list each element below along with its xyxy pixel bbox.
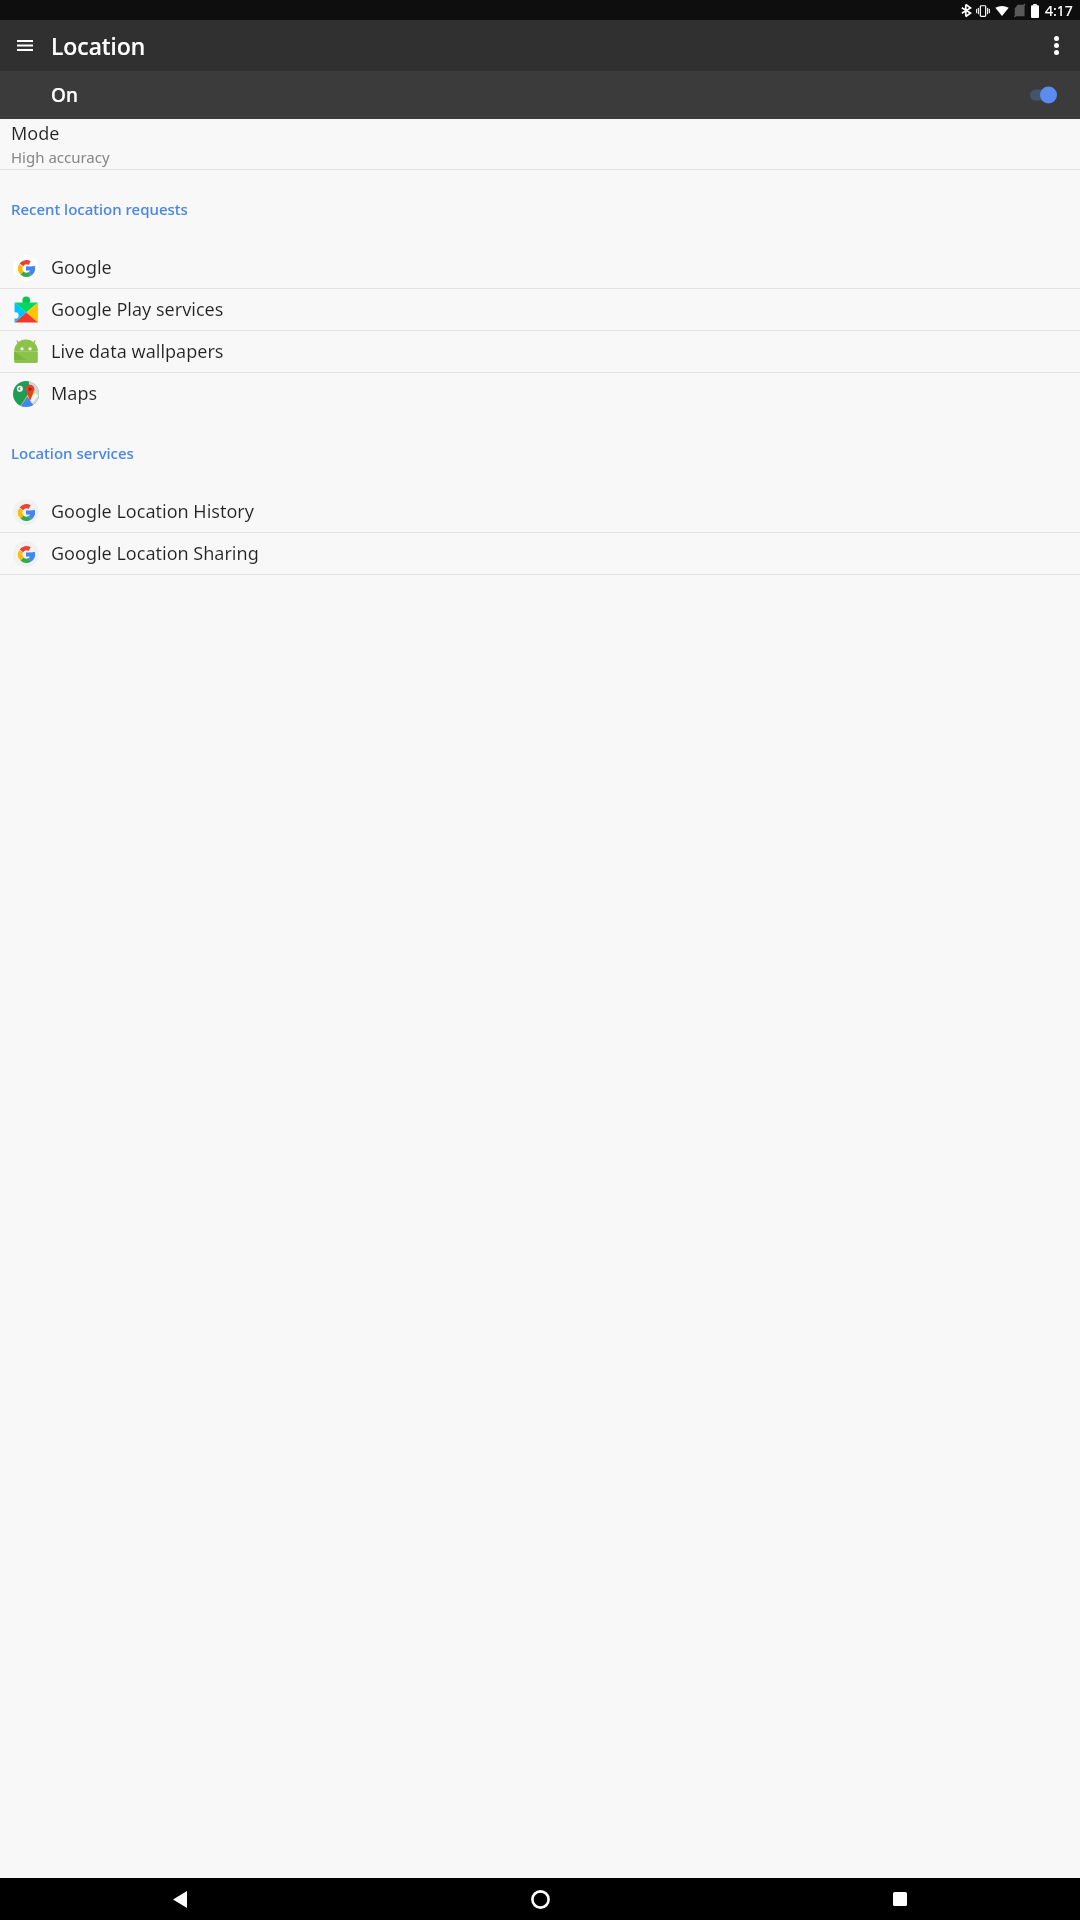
button[interactable]: More options (1033, 22, 1080, 69)
staticText: Google (51, 255, 112, 280)
button[interactable]: Recent apps (720, 1878, 1080, 1920)
staticText: Google Location History (51, 499, 254, 524)
staticText: Recent location requests (11, 199, 188, 219)
button[interactable]: Google Location Sharing (0, 533, 1080, 574)
button[interactable]: Maps (0, 373, 1080, 414)
button[interactable]: Open navigation drawer (1, 22, 48, 69)
button[interactable]: Google Location History (0, 491, 1080, 532)
button[interactable]: Live data wallpapers (0, 331, 1080, 372)
staticText: Live data wallpapers (51, 339, 224, 364)
button[interactable]: Mode (0, 119, 1080, 169)
button[interactable]: Google (0, 247, 1080, 288)
staticText: Mode (11, 121, 60, 146)
staticText: High accuracy (11, 147, 110, 167)
staticText: Maps (51, 381, 98, 406)
staticText: Location (51, 30, 146, 61)
staticText: Location services (11, 443, 134, 463)
staticText: Google Play services (51, 297, 224, 322)
button[interactable]: Home (360, 1878, 720, 1920)
staticText: 4:17 (1045, 1, 1073, 20)
button[interactable]: On (0, 71, 1080, 119)
button[interactable]: Back (0, 1878, 360, 1920)
staticText: Google Location Sharing (51, 541, 259, 566)
button[interactable]: Google Play services (0, 289, 1080, 330)
staticText: On (51, 82, 78, 108)
